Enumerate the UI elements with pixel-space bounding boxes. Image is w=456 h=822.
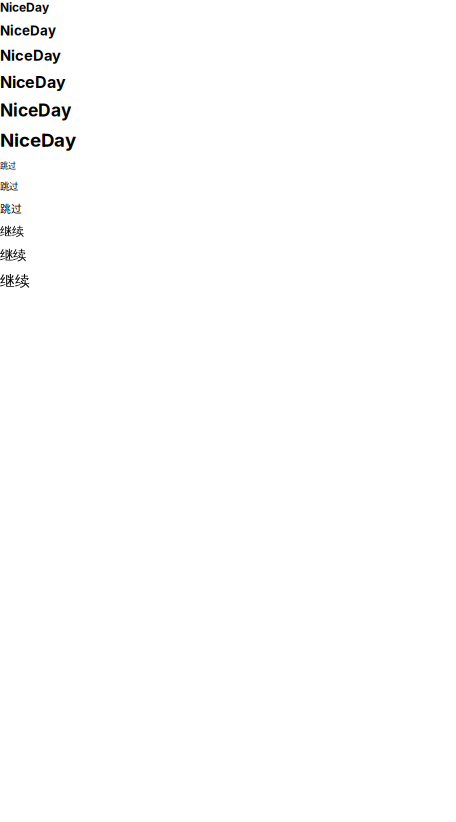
staticText: 继续 (0, 224, 24, 239)
staticText: 跳过 (0, 179, 18, 192)
staticText: NiceDay (0, 129, 76, 151)
staticText: NiceDay (0, 0, 49, 14)
staticText: NiceDay (0, 100, 71, 121)
staticText: 继续 (0, 272, 30, 290)
staticText: 继续 (0, 247, 26, 264)
staticText: NiceDay (0, 22, 56, 39)
staticText: NiceDay (0, 72, 66, 92)
staticText: NiceDay (0, 47, 61, 64)
staticText: 跳过 (0, 200, 22, 216)
staticText: 跳过 (0, 159, 16, 171)
